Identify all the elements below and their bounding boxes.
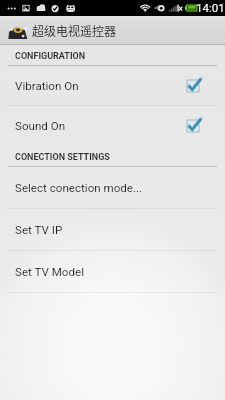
button[interactable]: Vibration On	[0, 66, 225, 105]
staticText: CONFIGURATION	[15, 51, 86, 62]
button[interactable]: Sound On	[0, 106, 225, 146]
staticText: Select conection mode...	[15, 181, 143, 195]
staticText: Vibration On	[15, 79, 187, 93]
staticText: Set TV IP	[15, 223, 63, 237]
button[interactable]: Select conection mode...	[0, 167, 225, 208]
other: Toggle	[187, 120, 199, 132]
staticText: CONECTION SETTINGS	[15, 152, 110, 163]
staticText: 14:01	[196, 1, 225, 15]
button[interactable]: Set TV IP	[0, 209, 225, 250]
staticText: Sound On	[15, 119, 187, 133]
button[interactable]: Set TV Model	[0, 251, 225, 292]
staticText: 超级电视遥控器	[32, 22, 117, 39]
staticText: Set TV Model	[15, 265, 84, 279]
other: Toggle	[187, 80, 199, 92]
